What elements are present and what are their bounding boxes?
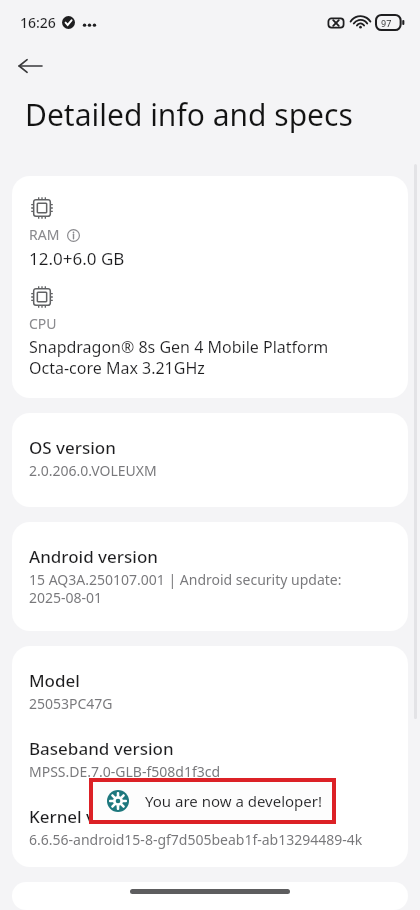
button[interactable]: Back [8, 44, 52, 88]
staticText: 6.6.56-android15-8-gf7d505beab1f-ab13294… [29, 830, 363, 849]
staticText: You are now a developer! [145, 791, 323, 811]
button[interactable]: Model [12, 646, 408, 867]
button[interactable]: OS version [12, 413, 408, 507]
staticText: Snapdragon® 8s Gen 4 Mobile Platform Oct… [29, 336, 329, 379]
button[interactable]: RAM [12, 176, 408, 398]
staticText: 15 AQ3A.250107.001 | Android security up… [29, 570, 342, 607]
staticText: RAM [29, 225, 60, 244]
staticText: Baseband version [29, 737, 174, 760]
staticText: 16:26 [20, 13, 56, 32]
button[interactable]: Internal storage [12, 882, 408, 910]
button[interactable]: Android version [12, 522, 408, 631]
staticText: 12.0+6.0 GB [29, 247, 125, 270]
button[interactable]: RAM information [65, 227, 81, 243]
staticText: 2.0.206.0.VOLEUXM [29, 461, 157, 480]
staticText: CPU [29, 314, 57, 333]
staticText: Kernel version [29, 805, 146, 828]
staticText: 25053PC47G [29, 694, 113, 713]
staticText: Detailed info and specs [25, 94, 353, 135]
staticText: MPSS.DE.7.0-GLB-f508d1f3cd [29, 762, 221, 781]
staticText: OS version [29, 436, 116, 459]
staticText: 97 [381, 17, 392, 29]
button[interactable]: You are now a developer! [93, 782, 332, 820]
staticText: Model [29, 669, 80, 692]
staticText: Android version [29, 545, 158, 568]
